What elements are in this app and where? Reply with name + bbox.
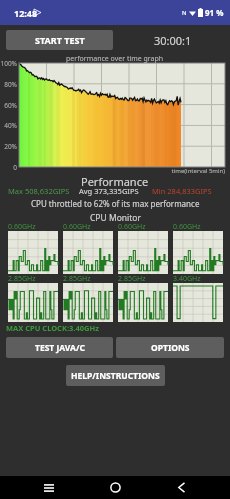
staticText: 2.85GHz <box>118 274 146 284</box>
staticText: 100% <box>0 59 17 68</box>
staticText: 0 <box>0 163 17 172</box>
staticText: 20% <box>0 142 17 151</box>
button[interactable]: TEST JAVA/C <box>6 337 113 358</box>
staticText: Min 284,833GIPS <box>152 186 212 196</box>
staticText: Max 508,632GIPS <box>8 186 70 196</box>
staticText: 60% <box>0 101 17 110</box>
staticText: 0.60GHz <box>118 222 146 232</box>
staticText: N <box>182 9 187 17</box>
staticText: 0.60GHz <box>173 222 201 232</box>
button[interactable]: Recent apps <box>26 476 72 499</box>
staticText: 0.60GHz <box>63 222 91 232</box>
staticText: Avg 373,335GIPS <box>79 186 139 196</box>
button[interactable]: OPTIONS <box>116 337 224 358</box>
staticText: TEST JAVA/C <box>35 342 85 354</box>
staticText: 0.60GHz <box>8 222 36 232</box>
staticText: 2.85GHz <box>63 274 91 284</box>
staticText: CPU Monitor <box>90 212 141 224</box>
button[interactable]: HELP/INSTRUCTIONS <box>66 365 165 386</box>
button[interactable]: START TEST <box>6 30 113 50</box>
staticText: 3.40GHz <box>173 274 201 284</box>
button[interactable]: Back <box>158 476 204 499</box>
staticText: MAX CPU CLOCK:3.40GHz <box>6 323 99 333</box>
staticText: 40% <box>0 121 17 130</box>
staticText: START TEST <box>35 34 85 46</box>
staticText: HELP/INSTRUCTIONS <box>71 370 160 382</box>
staticText: 91 % <box>205 7 224 18</box>
staticText: CPU throttled to 62% of its max performa… <box>31 198 200 209</box>
staticText: time(interval 5min) <box>170 167 225 175</box>
staticText: 2.85GHz <box>8 274 36 284</box>
staticText: 30:00:1 <box>154 33 192 48</box>
staticText: performance over time graph <box>66 54 164 64</box>
staticText: 80% <box>0 80 17 89</box>
staticText: 12:48 <box>14 7 38 19</box>
staticText: OPTIONS <box>151 342 190 354</box>
button[interactable]: Home <box>92 476 138 499</box>
staticText: Performance <box>81 174 149 189</box>
